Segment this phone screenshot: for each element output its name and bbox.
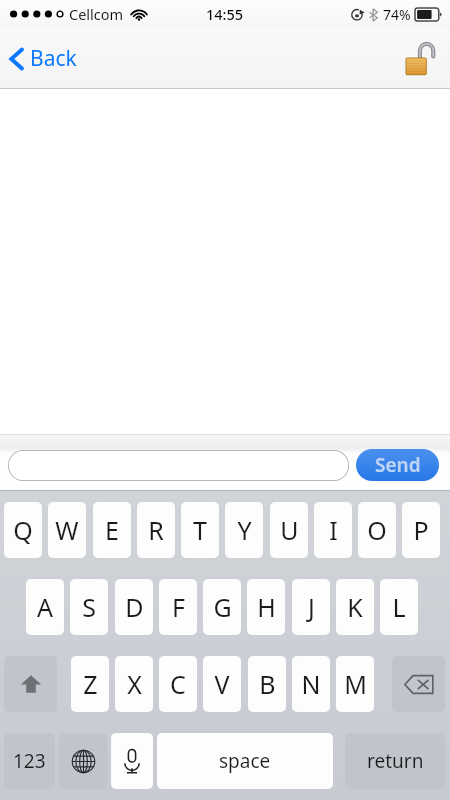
staticText: B bbox=[259, 667, 276, 701]
button[interactable]: 123 bbox=[4, 733, 55, 789]
staticText: U bbox=[280, 513, 299, 547]
staticText: Back bbox=[30, 44, 77, 73]
staticText: 14:55 bbox=[206, 4, 244, 24]
staticText: C bbox=[170, 667, 186, 701]
staticText: E bbox=[105, 513, 119, 547]
staticText: O bbox=[367, 513, 387, 547]
button[interactable]: E bbox=[93, 502, 131, 558]
button[interactable]: N bbox=[292, 656, 330, 712]
staticText: Send bbox=[375, 452, 421, 478]
staticText: Cellcom bbox=[69, 4, 124, 24]
staticText: Z bbox=[83, 667, 98, 701]
button[interactable]: W bbox=[48, 502, 86, 558]
staticText: F bbox=[172, 590, 185, 624]
staticText: 74% bbox=[383, 5, 411, 24]
staticText: Y bbox=[237, 513, 252, 547]
staticText: G bbox=[213, 590, 232, 624]
button[interactable]: G bbox=[203, 579, 241, 635]
button[interactable]: Send bbox=[356, 449, 439, 481]
staticText: J bbox=[308, 590, 315, 624]
button[interactable]: P bbox=[402, 502, 440, 558]
staticText: space bbox=[219, 748, 271, 774]
button[interactable]: T bbox=[181, 502, 219, 558]
button[interactable]: Dictation bbox=[111, 733, 153, 789]
staticText: D bbox=[125, 590, 144, 624]
staticText: P bbox=[413, 513, 429, 547]
staticText: X bbox=[127, 667, 142, 701]
staticText: H bbox=[257, 590, 276, 624]
staticText: N bbox=[301, 667, 321, 701]
button[interactable]: B bbox=[248, 656, 286, 712]
button[interactable]: J bbox=[292, 579, 330, 635]
button[interactable]: F bbox=[159, 579, 197, 635]
staticText: R bbox=[148, 513, 164, 547]
button[interactable]: Y bbox=[225, 502, 263, 558]
button[interactable]: R bbox=[137, 502, 175, 558]
staticText: W bbox=[55, 513, 79, 547]
staticText: 123 bbox=[13, 748, 46, 774]
button[interactable]: X bbox=[115, 656, 153, 712]
button[interactable]: space bbox=[157, 733, 333, 789]
staticText: return bbox=[367, 748, 424, 774]
button[interactable]: I bbox=[314, 502, 352, 558]
staticText: T bbox=[193, 513, 207, 547]
staticText: Q bbox=[13, 513, 33, 547]
button[interactable] bbox=[8, 450, 349, 481]
button[interactable]: Shift bbox=[4, 656, 57, 712]
button[interactable]: H bbox=[247, 579, 285, 635]
button[interactable]: Q bbox=[4, 502, 42, 558]
button[interactable]: C bbox=[159, 656, 197, 712]
button[interactable]: Backspace bbox=[392, 656, 445, 712]
staticText: M bbox=[344, 667, 367, 701]
button[interactable]: S bbox=[70, 579, 108, 635]
button[interactable]: U bbox=[270, 502, 308, 558]
button[interactable]: K bbox=[336, 579, 374, 635]
button[interactable]: Unlocked bbox=[400, 37, 442, 79]
staticText: K bbox=[347, 590, 363, 624]
staticText: I bbox=[329, 513, 338, 547]
button[interactable]: Z bbox=[71, 656, 109, 712]
button[interactable]: D bbox=[115, 579, 153, 635]
button[interactable]: V bbox=[203, 656, 241, 712]
button[interactable]: return bbox=[345, 733, 445, 789]
staticText: S bbox=[82, 590, 96, 624]
button[interactable]: A bbox=[26, 579, 64, 635]
staticText: A bbox=[37, 590, 53, 624]
button[interactable]: M bbox=[336, 656, 374, 712]
button[interactable]: O bbox=[358, 502, 396, 558]
button[interactable]: Next keyboard bbox=[59, 733, 107, 789]
button[interactable]: L bbox=[380, 579, 418, 635]
staticText: V bbox=[214, 667, 230, 701]
button[interactable]: Back bbox=[0, 38, 91, 79]
staticText: L bbox=[392, 590, 406, 624]
